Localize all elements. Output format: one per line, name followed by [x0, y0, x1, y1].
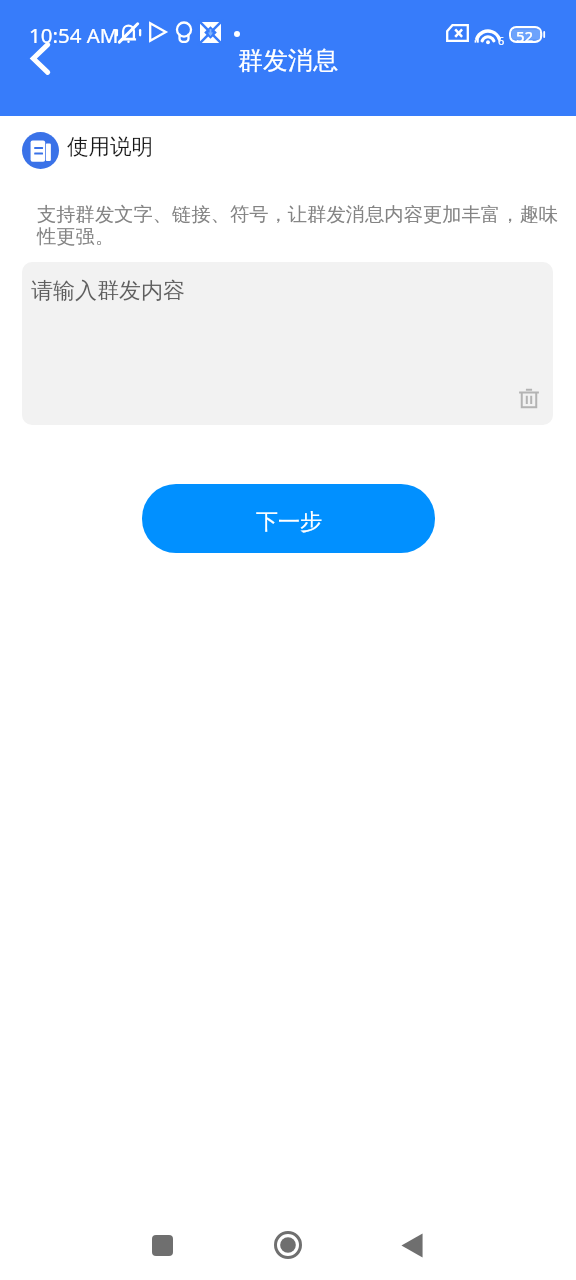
staticText: 请输入群发内容 — [31, 277, 185, 305]
button[interactable]: Recent apps — [132, 1215, 192, 1275]
staticText: 支持群发文字、链接、符号，让群发消息内容更加丰富，趣味性更强。 — [37, 202, 560, 249]
button[interactable]: Back — [12, 30, 68, 86]
staticText: 52 — [516, 26, 534, 46]
staticText: 10:54 AM — [29, 21, 119, 49]
button[interactable]: 请输入群发内容 — [22, 262, 553, 425]
staticText: 6 — [498, 33, 505, 48]
button[interactable]: Home — [258, 1215, 318, 1275]
staticText: 群发消息 — [238, 45, 338, 76]
staticText: 下一步 — [256, 508, 322, 536]
button[interactable]: 下一步 — [142, 484, 435, 553]
button[interactable]: Back — [382, 1215, 442, 1275]
staticText: 使用说明 — [67, 133, 153, 160]
button[interactable]: Clear text — [510, 379, 548, 417]
